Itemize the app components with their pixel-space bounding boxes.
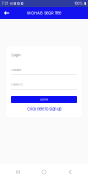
button[interactable]: LOGIN: [11, 96, 77, 103]
button[interactable]: Click here to sign up: [6, 106, 81, 112]
staticText: 100%: [74, 1, 83, 6]
button[interactable]: Home: [36, 164, 52, 180]
staticText: 7:21: [1, 1, 7, 6]
staticText: LOGIN: [40, 98, 48, 101]
button[interactable]: Back: [62, 164, 78, 180]
staticText: Click here to sign up: [27, 107, 61, 111]
staticText: Username: [11, 68, 21, 72]
button[interactable]: Recent apps: [10, 164, 26, 180]
staticText: MOHAB SeQR free: [27, 11, 61, 15]
staticText: Login: [11, 53, 20, 57]
button[interactable]: Back: [0, 7, 13, 19]
staticText: Password: [11, 83, 23, 86]
